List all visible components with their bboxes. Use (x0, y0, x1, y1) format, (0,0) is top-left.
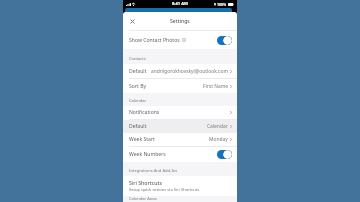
staticText: Calendar Apps (129, 196, 157, 200)
button[interactable]: Sort By (123, 79, 237, 93)
staticText: 100% (217, 2, 227, 7)
staticText: Settings (170, 18, 190, 25)
button[interactable]: Show Contact Photos (123, 31, 237, 49)
button[interactable]: Close (128, 17, 137, 26)
staticText: andriigorokhovskyi@outlook.com (151, 68, 228, 75)
staticText: Monday (209, 136, 228, 143)
staticText: Integrations And Add-Ins (129, 168, 178, 174)
staticText: Default (129, 68, 147, 75)
staticText: Default (129, 123, 147, 130)
staticText: Week Start (129, 136, 155, 143)
staticText: Week Numbers (129, 151, 166, 158)
staticText: Notifications (129, 109, 160, 116)
button[interactable]: Default (123, 64, 237, 78)
staticText: Contacts (129, 56, 146, 62)
button[interactable]: Week Numbers (123, 147, 237, 162)
staticText: First Name (203, 83, 228, 90)
staticText: Siri Shortcuts (129, 179, 162, 186)
staticText: Show Contact Photos (129, 37, 180, 44)
button[interactable]: Week Start (123, 133, 237, 146)
staticText: Sort By (129, 83, 147, 90)
button[interactable]: Siri Shortcuts (123, 176, 237, 196)
button[interactable]: Default (123, 120, 237, 133)
button[interactable]: Notifications (123, 106, 237, 119)
staticText: Calendar (207, 123, 228, 130)
staticText: Setup quick actions via Siri Shortcuts (129, 187, 200, 193)
staticText: 8:41 AM (172, 1, 188, 7)
button[interactable]: Show Contact Photos toggle (217, 36, 232, 45)
button[interactable]: Week Numbers toggle (217, 150, 232, 159)
staticText: Calendar (129, 98, 147, 104)
